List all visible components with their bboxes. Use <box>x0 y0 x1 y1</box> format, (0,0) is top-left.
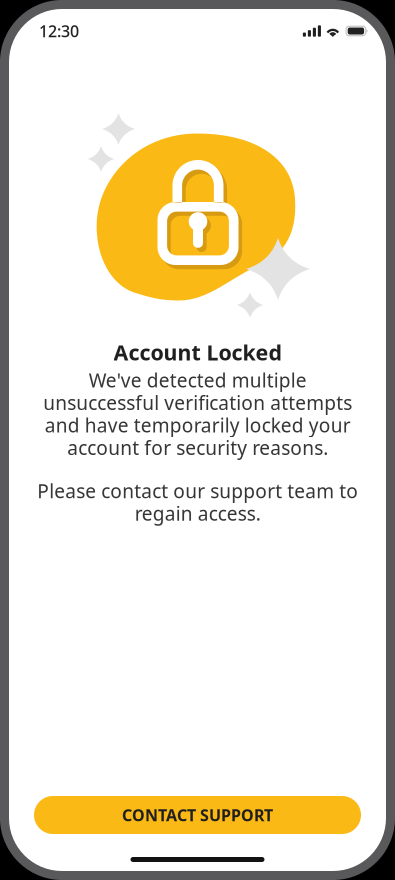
button[interactable]: CONTACT SUPPORT <box>34 796 361 834</box>
staticText: Account Locked <box>113 338 281 366</box>
staticText: We've detected multiple unsuccessful ver… <box>43 367 352 460</box>
staticText: 12:30 <box>39 20 79 42</box>
staticText: Please contact our support team to regai… <box>37 478 358 526</box>
staticText: CONTACT SUPPORT <box>122 804 273 826</box>
